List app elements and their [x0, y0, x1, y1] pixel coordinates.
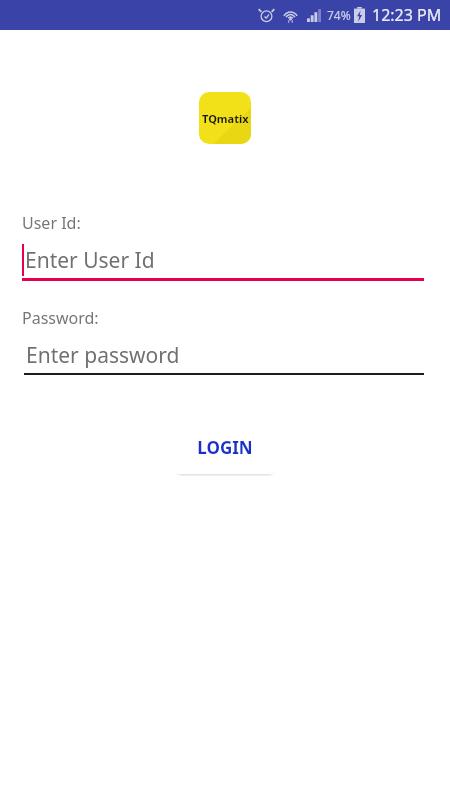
staticText: LOGIN — [197, 436, 253, 459]
staticText: TQmatix — [202, 111, 249, 126]
staticText: Password: — [22, 307, 99, 329]
button[interactable]: Enter User Id — [22, 242, 424, 281]
staticText: Enter password — [26, 341, 180, 370]
staticText: User Id: — [22, 212, 81, 234]
staticText: 12:23 PM — [372, 4, 442, 26]
staticText: 74% — [327, 7, 351, 23]
staticText: Enter User Id — [25, 246, 155, 275]
button[interactable]: LOGIN — [172, 421, 278, 474]
button[interactable]: Enter password — [24, 337, 424, 375]
other: TQmatix logo — [199, 92, 251, 144]
